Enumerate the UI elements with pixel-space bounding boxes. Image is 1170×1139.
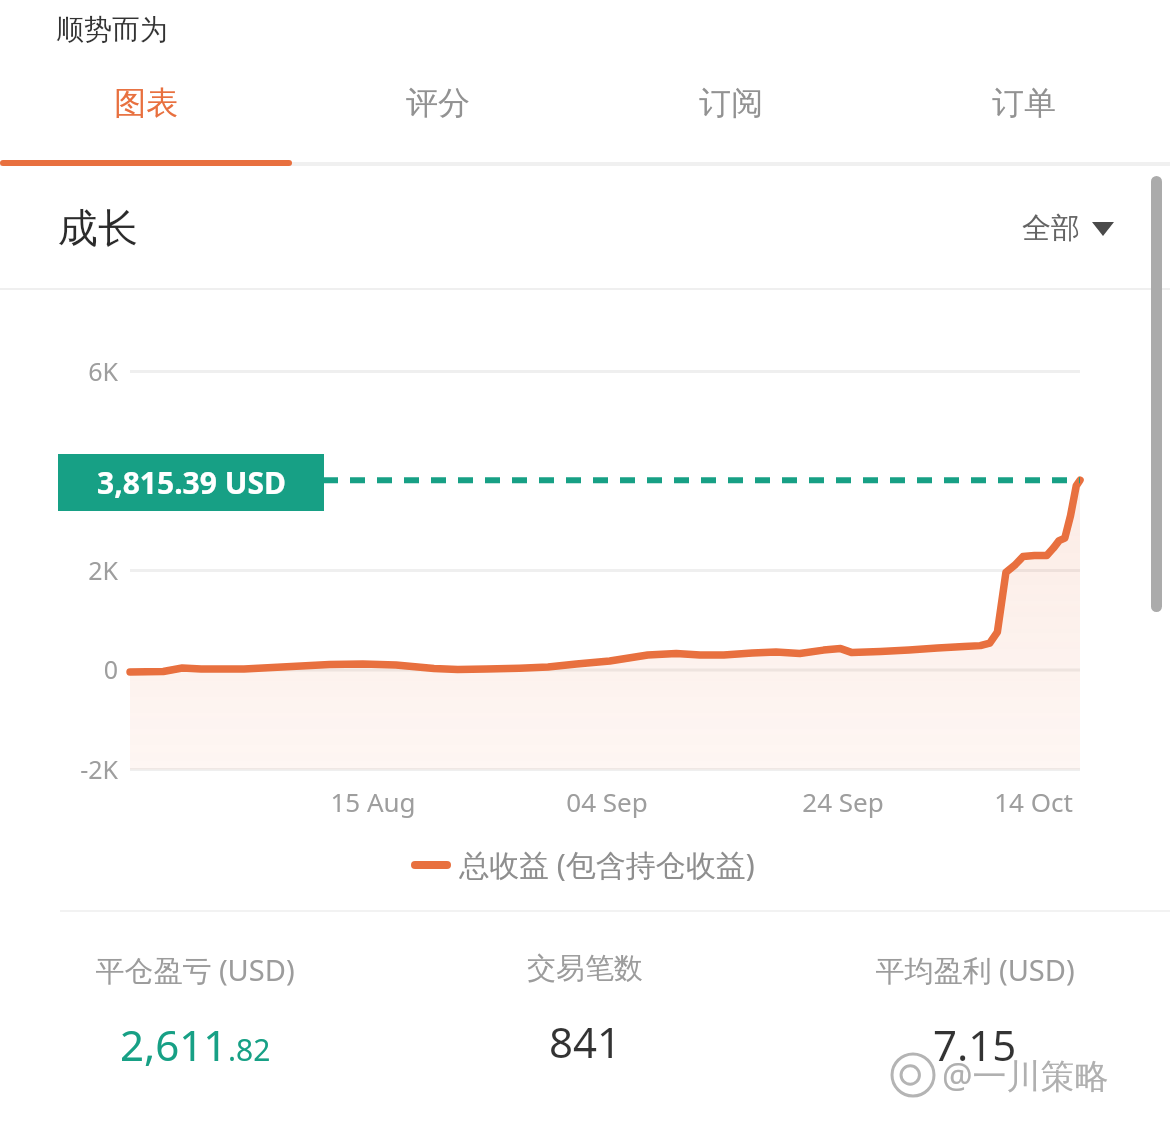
staticText: 04 Sep xyxy=(566,784,648,819)
staticText: 全部 xyxy=(1022,210,1080,247)
staticText: 3,815.39 USD xyxy=(97,462,286,503)
button[interactable]: 订单 xyxy=(877,58,1170,166)
button[interactable]: 平均盈利 (USD) xyxy=(780,950,1170,1073)
staticText: 2K xyxy=(88,553,118,587)
staticText: 订单 xyxy=(992,83,1056,123)
staticText: 841 xyxy=(549,1013,622,1070)
button[interactable]: 全部 xyxy=(1022,210,1114,247)
staticText: 24 Sep xyxy=(802,784,884,819)
staticText: 6K xyxy=(88,354,118,388)
staticText: 0 xyxy=(103,652,118,686)
staticText: 15 Aug xyxy=(330,784,416,819)
staticText: 顺势而为 xyxy=(56,12,168,47)
staticText: .82 xyxy=(228,1029,271,1070)
staticText: -2K xyxy=(80,752,118,786)
staticText: 平仓盈亏 (USD) xyxy=(95,950,295,990)
staticText: 评分 xyxy=(406,83,470,123)
staticText: 2,611 xyxy=(120,1016,228,1073)
button[interactable]: 图表 xyxy=(0,58,292,166)
button[interactable]: 评分 xyxy=(292,58,584,166)
staticText: 图表 xyxy=(114,83,178,123)
staticText: 订阅 xyxy=(699,83,763,123)
staticText: 14 Oct xyxy=(994,784,1073,819)
staticText: @一川策略 xyxy=(942,1052,1109,1098)
staticText: 7.15 xyxy=(933,1016,1017,1073)
other: Watermark xyxy=(890,1052,1109,1098)
staticText: 交易笔数 xyxy=(527,950,643,987)
staticText: 成长 xyxy=(58,203,138,253)
staticText: 平均盈利 (USD) xyxy=(875,950,1075,990)
button[interactable]: 订阅 xyxy=(584,58,877,166)
staticText: 总收益 (包含持仓收益) xyxy=(459,844,755,885)
button[interactable]: 交易笔数 xyxy=(390,950,780,1070)
button[interactable]: 平仓盈亏 (USD) xyxy=(0,950,390,1073)
